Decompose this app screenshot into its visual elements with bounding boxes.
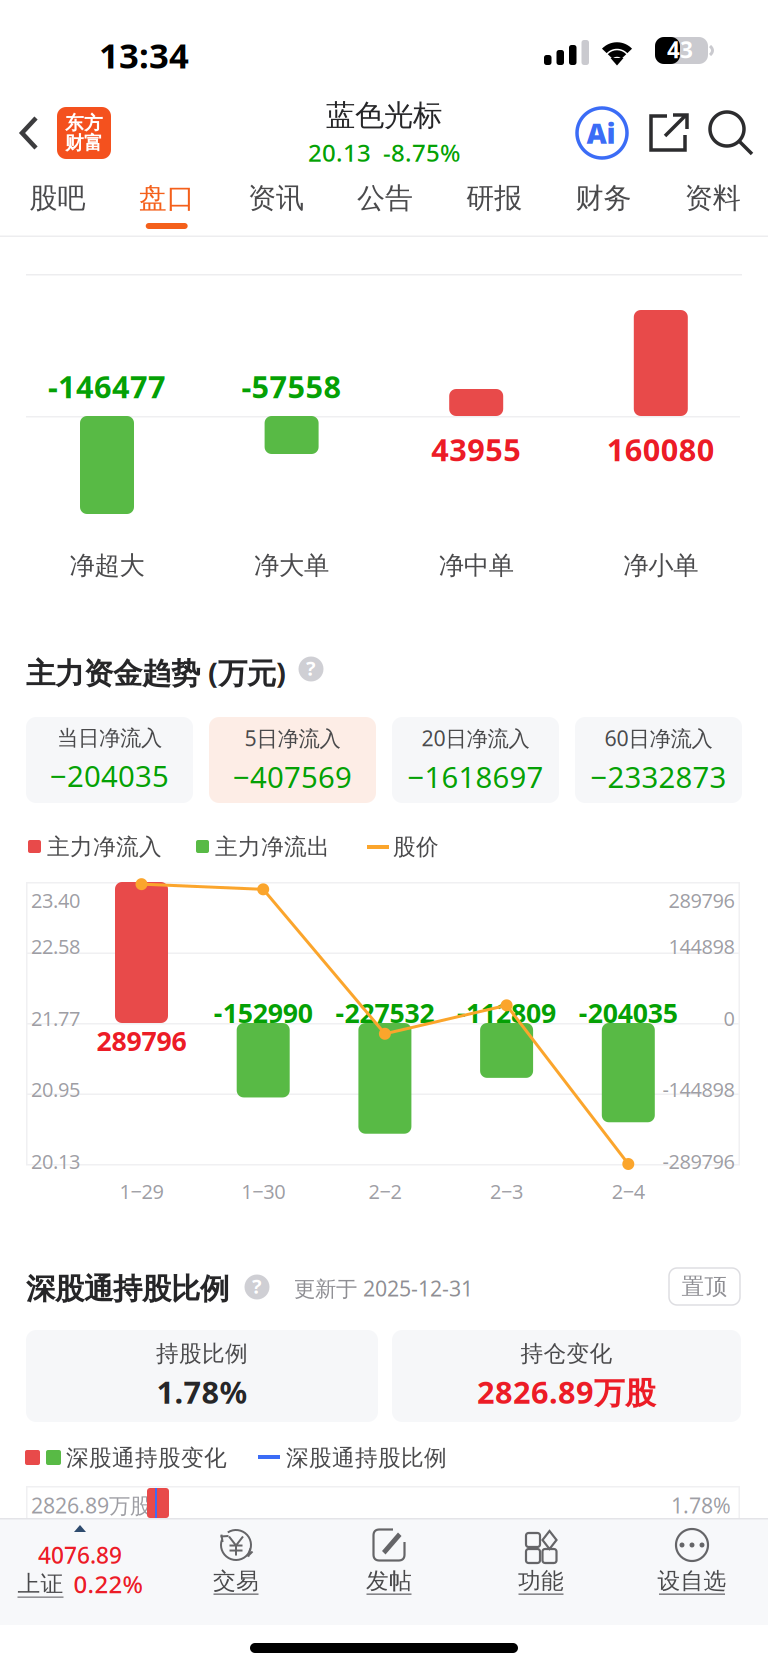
staticText: 盘口 bbox=[139, 181, 195, 215]
staticText: 289796 bbox=[96, 1023, 186, 1058]
button[interactable]: 交易 bbox=[186, 1518, 286, 1625]
staticText: -227532 bbox=[335, 995, 434, 1030]
button[interactable]: 资料 bbox=[658, 178, 767, 236]
button[interactable]: 功能 bbox=[491, 1518, 591, 1625]
staticText: 资料 bbox=[685, 181, 741, 215]
staticText: 2−2 bbox=[368, 1178, 401, 1205]
staticText: -146477 bbox=[48, 366, 166, 407]
button[interactable]: 当日净流入 bbox=[26, 717, 193, 803]
staticText: 当日净流入 bbox=[57, 725, 162, 751]
staticText: 财富 bbox=[65, 131, 103, 154]
staticText: 5日净流入 bbox=[244, 724, 340, 752]
staticText: 43955 bbox=[431, 429, 521, 470]
button[interactable]: AI assistant bbox=[576, 107, 628, 159]
button[interactable]: 设自选 bbox=[642, 1518, 742, 1625]
staticText: 主力资金趋势 (万元) bbox=[26, 653, 286, 692]
staticText: 160080 bbox=[607, 429, 715, 470]
staticText: 144898 bbox=[668, 933, 734, 960]
staticText: 43 bbox=[667, 34, 693, 64]
button[interactable]: Search bbox=[709, 111, 755, 157]
staticText: Ai bbox=[586, 114, 615, 152]
staticText: -152990 bbox=[214, 995, 313, 1030]
staticText: 设自选 bbox=[657, 1567, 726, 1595]
staticText: 2826.89万股 bbox=[477, 1372, 656, 1412]
button[interactable]: 60日净流入 bbox=[575, 717, 742, 803]
staticText: 东方 bbox=[65, 112, 103, 134]
staticText: 资讯 bbox=[248, 181, 304, 215]
staticText: 1−30 bbox=[241, 1178, 285, 1205]
staticText: 财务 bbox=[575, 181, 631, 215]
button[interactable]: 持仓变化 bbox=[392, 1330, 741, 1422]
staticText: 净大单 bbox=[254, 550, 329, 581]
staticText: −204035 bbox=[50, 756, 169, 795]
staticText: 20.13 -8.75% bbox=[308, 137, 460, 168]
staticText: 上证 bbox=[17, 1570, 63, 1598]
staticText: 21.77 bbox=[31, 1005, 80, 1032]
staticText: 持股比例 bbox=[156, 1340, 248, 1367]
staticText: -144898 bbox=[662, 1076, 734, 1103]
staticText: 主力净流入 bbox=[47, 833, 162, 861]
staticText: 交易 bbox=[213, 1567, 259, 1595]
button[interactable]: Help bbox=[243, 1273, 271, 1301]
button[interactable]: 股吧 bbox=[3, 178, 112, 236]
staticText: 0.22% bbox=[73, 1568, 142, 1600]
button[interactable]: 盘口 bbox=[112, 178, 221, 236]
staticText: 289796 bbox=[668, 887, 734, 914]
button[interactable]: 4076.89 bbox=[0, 1518, 160, 1625]
staticText: 13:34 bbox=[99, 32, 189, 78]
staticText: −2332873 bbox=[590, 757, 726, 796]
staticText: -289796 bbox=[662, 1148, 734, 1175]
staticText: 2−3 bbox=[490, 1178, 523, 1205]
staticText: 20.13 bbox=[31, 1148, 80, 1175]
button[interactable]: 发帖 bbox=[339, 1518, 439, 1625]
staticText: 深股通持股比例 bbox=[26, 1271, 229, 1307]
button[interactable]: 20日净流入 bbox=[392, 717, 559, 803]
button[interactable]: 资讯 bbox=[221, 178, 330, 236]
staticText: 1.78% bbox=[156, 1372, 247, 1412]
staticText: 60日净流入 bbox=[604, 724, 712, 752]
staticText: 股价 bbox=[393, 833, 439, 861]
staticText: 1.78% bbox=[671, 1491, 731, 1519]
button[interactable]: 公告 bbox=[331, 178, 440, 236]
staticText: ? bbox=[252, 1273, 262, 1299]
staticText: 功能 bbox=[518, 1567, 564, 1595]
staticText: 20日净流入 bbox=[421, 724, 529, 752]
staticText: 股吧 bbox=[29, 181, 85, 215]
button[interactable]: Share bbox=[649, 114, 689, 154]
staticText: 22.58 bbox=[31, 933, 80, 960]
button[interactable]: 持股比例 bbox=[26, 1330, 378, 1422]
staticText: −407569 bbox=[233, 757, 352, 796]
button[interactable]: Back bbox=[0, 88, 123, 178]
staticText: 2826.89万股 bbox=[31, 1491, 151, 1519]
staticText: 主力净流出 bbox=[215, 833, 330, 861]
staticText: -57558 bbox=[242, 366, 342, 407]
button[interactable]: 置顶 bbox=[668, 1267, 741, 1306]
staticText: 蓝色光标 bbox=[326, 97, 442, 133]
staticText: ? bbox=[306, 655, 316, 681]
staticText: -204035 bbox=[579, 995, 678, 1030]
staticText: 发帖 bbox=[366, 1567, 412, 1595]
button[interactable]: 财务 bbox=[549, 178, 658, 236]
staticText: 净中单 bbox=[439, 550, 514, 581]
staticText: 更新于 2025-12-31 bbox=[294, 1274, 473, 1302]
staticText: −1618697 bbox=[407, 757, 543, 796]
staticText: 23.40 bbox=[31, 887, 80, 914]
staticText: 深股通持股变化 bbox=[66, 1444, 227, 1472]
staticText: 0 bbox=[723, 1005, 734, 1032]
staticText: 20.95 bbox=[31, 1076, 80, 1103]
staticText: 研报 bbox=[466, 181, 522, 215]
staticText: 净小单 bbox=[623, 550, 698, 581]
staticText: 2−4 bbox=[612, 1178, 645, 1205]
staticText: 持仓变化 bbox=[520, 1340, 612, 1367]
staticText: 置顶 bbox=[681, 1273, 727, 1300]
staticText: 深股通持股比例 bbox=[286, 1444, 447, 1472]
button[interactable]: Help bbox=[297, 655, 325, 683]
staticText: 4076.89 bbox=[38, 1540, 122, 1570]
staticText: 1−29 bbox=[119, 1178, 163, 1205]
button[interactable]: 5日净流入 bbox=[209, 717, 376, 803]
staticText: -112809 bbox=[457, 995, 556, 1030]
staticText: 净超大 bbox=[69, 550, 144, 581]
button[interactable]: 研报 bbox=[440, 178, 549, 236]
staticText: 公告 bbox=[357, 181, 413, 215]
